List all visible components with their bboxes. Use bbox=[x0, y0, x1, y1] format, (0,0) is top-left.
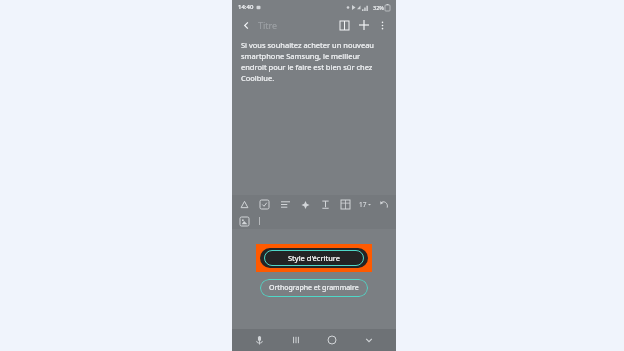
staticText: 17 bbox=[359, 200, 367, 209]
button[interactable]: Recent apps bbox=[287, 331, 305, 349]
button[interactable]: Orthographe et grammaire bbox=[260, 279, 368, 297]
button[interactable]: Bullet list bbox=[278, 197, 292, 211]
button[interactable]: Brush bbox=[237, 197, 251, 211]
button[interactable]: Back bbox=[360, 331, 378, 349]
button[interactable]: Text format bbox=[318, 197, 332, 211]
button[interactable]: 17 bbox=[359, 197, 371, 211]
button[interactable]: AI assist bbox=[298, 197, 312, 211]
button[interactable]: Style d'écriture bbox=[260, 248, 368, 268]
staticText: 14:40 bbox=[238, 3, 254, 11]
button[interactable]: Add bbox=[356, 17, 372, 33]
button[interactable]: More options bbox=[375, 18, 389, 32]
staticText: 32% bbox=[373, 4, 384, 11]
button[interactable]: Reading view bbox=[336, 17, 352, 33]
button[interactable]: Table bbox=[338, 197, 352, 211]
button[interactable]: Undo bbox=[377, 197, 391, 211]
button[interactable]: Insert image bbox=[237, 214, 251, 228]
button[interactable]: Checklist bbox=[257, 197, 271, 211]
button[interactable]: Home bbox=[323, 331, 341, 349]
staticText: Style d'écriture bbox=[288, 253, 340, 263]
staticText: Si vous souhaitez acheter un nouveau sma… bbox=[241, 40, 387, 83]
button[interactable]: Back bbox=[239, 18, 253, 32]
staticText: Titre bbox=[258, 19, 278, 31]
staticText: Orthographe et grammaire bbox=[269, 283, 359, 293]
button[interactable]: Voice input bbox=[250, 331, 268, 349]
